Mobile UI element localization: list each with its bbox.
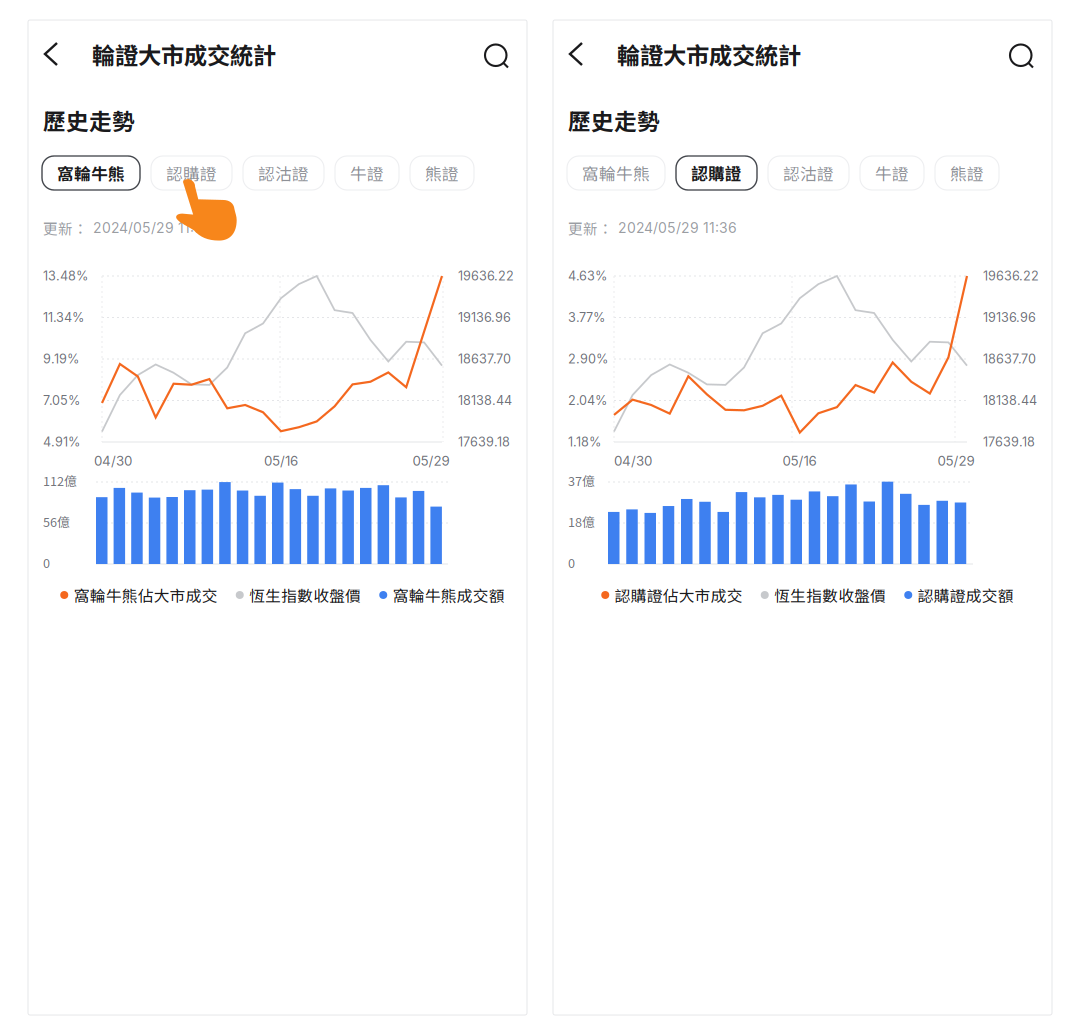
staticText: 輪證大市成交統計 [617,37,801,71]
button[interactable]: 牛證 [335,156,399,190]
staticText: 17639.18 [983,434,1035,450]
staticText: 56億 [43,512,70,531]
staticText: 熊證 [425,161,459,185]
staticText: 更新： [568,217,613,239]
button[interactable]: Back [34,32,68,76]
staticText: 11.34% [43,310,84,325]
staticText: 4.91% [43,434,80,450]
staticText: 19636.22 [983,268,1039,284]
staticText: 05/16 [782,453,816,469]
staticText: 2024/05/29 11:36 [618,219,737,236]
button[interactable]: 牛證 [860,156,924,190]
staticText: 牛證 [875,161,909,185]
staticText: 窩輪牛熊成交額 [393,584,505,606]
staticText: 05/29 [412,453,449,469]
button[interactable]: 熊證 [935,156,999,190]
staticText: 19136.96 [458,310,511,325]
staticText: 05/29 [937,453,974,469]
staticText: 9.19% [43,351,79,367]
staticText: 18637.70 [983,351,1036,367]
staticText: 04/30 [94,453,132,469]
staticText: 2.90% [568,351,608,367]
staticText: 05/16 [264,453,298,469]
staticText: 2024/05/29 11:36 [93,219,212,236]
staticText: 17639.18 [458,434,510,450]
staticText: 18億 [568,512,595,531]
staticText: 窩輪牛熊 [57,161,125,185]
staticText: 18138.44 [983,393,1037,408]
staticText: 熊證 [950,161,984,185]
staticText: 認購證 [166,161,217,185]
button[interactable]: Back [559,32,593,76]
staticText: 18138.44 [458,393,512,408]
staticText: 恆生指數收盤價 [249,584,361,606]
staticText: 歷史走勢 [568,104,660,136]
button[interactable]: Search [998,32,1045,79]
button[interactable]: 認沽證 [243,156,324,190]
staticText: 4.63% [568,268,607,284]
staticText: 112億 [43,471,77,490]
staticText: 37億 [568,471,595,490]
staticText: 輪證大市成交統計 [92,37,276,71]
button[interactable]: 認購證 [151,156,232,190]
staticText: 13.48% [43,268,88,284]
staticText: 更新： [43,217,88,239]
staticText: 7.05% [43,393,80,408]
staticText: 認沽證 [258,161,309,185]
button[interactable]: 認購證 [676,156,757,190]
staticText: 恆生指數收盤價 [774,584,886,606]
staticText: 19136.96 [983,310,1036,325]
button[interactable]: 認沽證 [768,156,849,190]
staticText: 窩輪牛熊 [582,161,650,185]
button[interactable]: 窩輪牛熊 [567,156,665,190]
button[interactable]: 熊證 [410,156,474,190]
staticText: 認購證成交額 [918,584,1014,606]
staticText: 認沽證 [783,161,834,185]
staticText: 0 [568,553,575,572]
staticText: 19636.22 [458,268,514,284]
staticText: 2.04% [568,393,607,408]
staticText: 認購證 [691,161,742,185]
button[interactable]: 窩輪牛熊 [42,156,140,190]
staticText: 歷史走勢 [43,104,135,136]
staticText: 1.18% [568,434,601,450]
button[interactable]: Search [473,32,520,79]
staticText: 3.77% [568,310,605,325]
staticText: 牛證 [350,161,384,185]
staticText: 04/30 [614,453,652,469]
staticText: 18637.70 [458,351,511,367]
staticText: 0 [43,553,50,572]
staticText: 認購證佔大市成交 [615,584,743,606]
staticText: 窩輪牛熊佔大市成交 [74,584,218,606]
